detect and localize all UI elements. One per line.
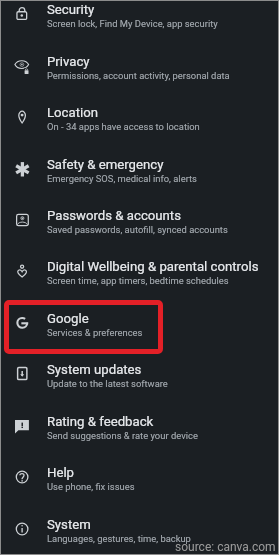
staticText: source: canva.com: [175, 540, 276, 554]
staticText: Google: [47, 311, 89, 326]
staticText: Screen time, app timers, bedtime schedul…: [47, 275, 229, 286]
staticText: Rating & feedback: [47, 414, 154, 429]
staticText: Saved passwords, autofill, synced accoun…: [47, 224, 228, 235]
staticText: Digital Wellbeing & parental controls: [47, 259, 259, 274]
staticText: Permissions, account activity, personal …: [47, 70, 230, 81]
staticText: On - 34 apps have access to location: [47, 121, 200, 132]
staticText: Send suggestions & rate your device: [47, 430, 198, 441]
staticText: System: [47, 517, 91, 532]
staticText: Security: [47, 2, 95, 17]
button[interactable]: Location: [1, 105, 278, 156]
button[interactable]: Security: [1, 2, 278, 53]
staticText: Help: [47, 465, 75, 480]
staticText: Privacy: [47, 54, 90, 69]
staticText: Services & preferences: [47, 327, 143, 338]
button[interactable]: Digital Wellbeing & parental controls: [1, 259, 278, 310]
button[interactable]: Rating & feedback: [1, 414, 278, 465]
button[interactable]: System: [1, 517, 278, 555]
staticText: Location: [47, 105, 99, 120]
staticText: Emergency SOS, medical info, alerts: [47, 173, 197, 184]
staticText: System updates: [47, 362, 142, 377]
staticText: Languages, gestures, time, backup: [47, 533, 191, 544]
button[interactable]: System updates: [1, 362, 278, 413]
staticText: Update to the latest software: [47, 378, 168, 389]
staticText: Screen lock, Find My Device, app securit…: [47, 18, 218, 29]
staticText: Use phone, fix issues: [47, 481, 135, 492]
button[interactable]: Privacy: [1, 54, 278, 105]
staticText: Passwords & accounts: [47, 208, 181, 223]
button[interactable]: Help: [1, 465, 278, 516]
staticText: Safety & emergency: [47, 157, 164, 172]
button[interactable]: Google: [1, 311, 278, 362]
button[interactable]: Safety & emergency: [1, 157, 278, 208]
button[interactable]: Passwords & accounts: [1, 208, 278, 259]
